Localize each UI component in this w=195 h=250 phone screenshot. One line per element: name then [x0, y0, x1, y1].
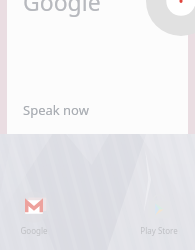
button[interactable]: Microphone	[146, 0, 195, 36]
button[interactable]: Google	[6, 192, 62, 236]
staticText: Google	[6, 225, 62, 236]
staticText: Speak now	[23, 101, 89, 119]
staticText: Play Store	[129, 225, 189, 236]
button[interactable]: Google	[7, 0, 188, 134]
button[interactable]: Play Store	[129, 192, 189, 236]
staticText: Google	[23, 0, 101, 17]
